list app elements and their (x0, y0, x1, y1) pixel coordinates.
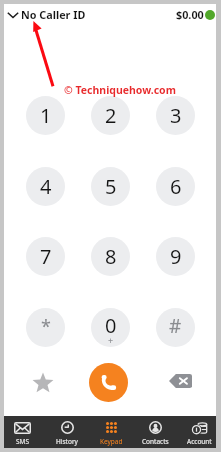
button[interactable]: No Caller ID (7, 5, 86, 24)
button[interactable]: Backspace (160, 367, 200, 395)
button[interactable]: 3 (156, 96, 195, 135)
staticText: 1 (40, 102, 52, 129)
staticText: History (56, 437, 78, 446)
button[interactable]: Account (177, 416, 221, 448)
button[interactable]: 7 (26, 237, 65, 276)
staticText: 5 (105, 173, 117, 200)
button[interactable]: Keypad (89, 416, 133, 448)
staticText: 4 (40, 173, 52, 200)
button[interactable]: 2 (91, 96, 130, 135)
button[interactable]: 8 (91, 237, 130, 276)
staticText: 0 (105, 312, 117, 339)
staticText: No Caller ID (21, 7, 86, 22)
staticText: 9 (170, 243, 182, 270)
button[interactable]: * (26, 308, 65, 347)
button[interactable]: SMS (0, 416, 45, 448)
button[interactable]: # (156, 308, 195, 347)
button[interactable]: 6 (156, 167, 195, 206)
staticText: + (108, 334, 114, 346)
staticText: * (41, 314, 51, 339)
button[interactable]: 0 (91, 308, 130, 347)
staticText: Account (187, 437, 212, 446)
staticText: Keypad (100, 437, 123, 446)
button[interactable]: History (45, 416, 89, 448)
staticText: 7 (40, 243, 52, 270)
button[interactable]: Contacts (133, 416, 177, 448)
staticText: # (169, 313, 182, 339)
staticText: 2 (105, 102, 117, 129)
button[interactable]: $0.00 (176, 5, 215, 24)
staticText: Contacts (142, 437, 169, 446)
staticText: 6 (170, 173, 182, 200)
staticText: 8 (105, 243, 117, 270)
button[interactable]: Favorites (23, 363, 63, 403)
staticText: SMS (16, 437, 30, 446)
staticText: $0.00 (176, 7, 204, 22)
button[interactable]: 1 (26, 96, 65, 135)
staticText: © Techniquehow.com (64, 83, 176, 97)
button[interactable]: 4 (26, 167, 65, 206)
button[interactable]: Call (89, 363, 128, 402)
button[interactable]: 5 (91, 167, 130, 206)
staticText: 3 (170, 102, 182, 129)
button[interactable]: 9 (156, 237, 195, 276)
